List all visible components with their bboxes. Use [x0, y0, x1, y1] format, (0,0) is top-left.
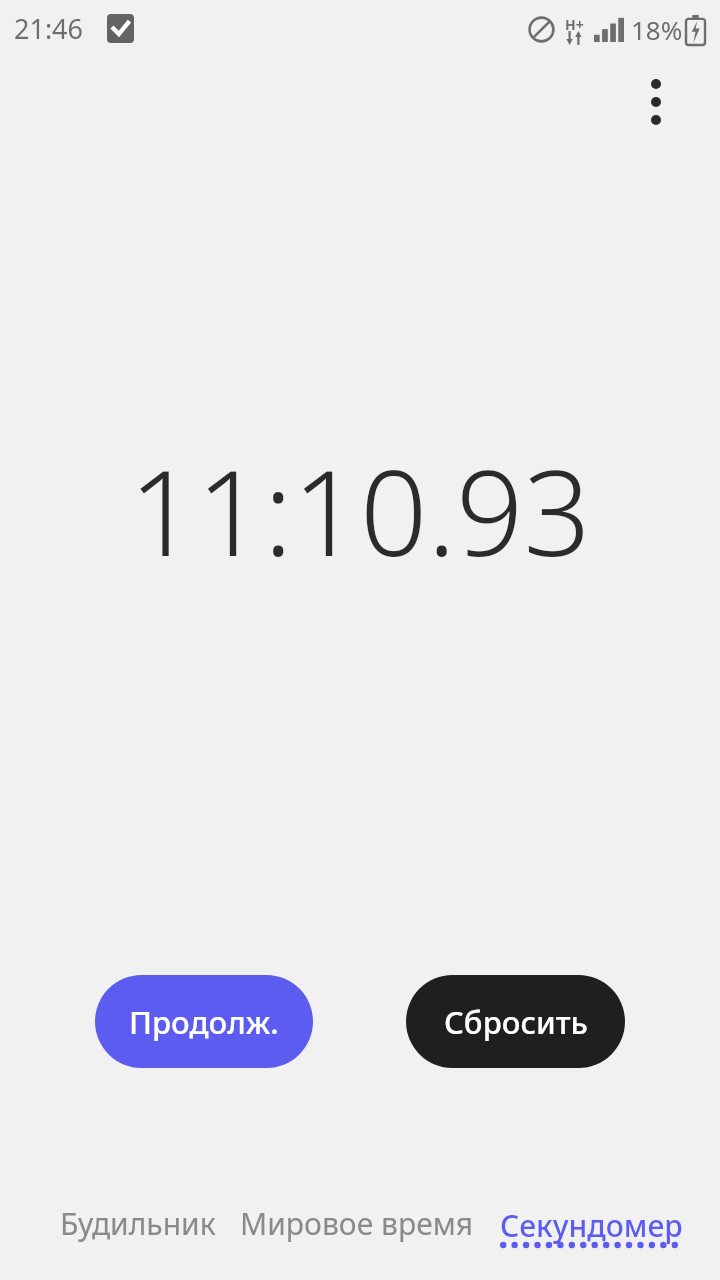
button[interactable]: Мировое время: [234, 1190, 480, 1256]
staticText: 18%: [631, 12, 683, 47]
staticText: 11:10.93: [129, 430, 591, 570]
staticText: Мировое время: [240, 1203, 474, 1244]
staticText: Секундомер: [500, 1205, 683, 1246]
staticText: Будильник: [60, 1203, 216, 1244]
button[interactable]: Секундомер: [480, 1190, 720, 1270]
staticText: Сбросить: [444, 1001, 588, 1043]
staticText: 21:46: [14, 10, 84, 47]
button[interactable]: Продолж.: [95, 975, 313, 1068]
staticText: Продолж.: [129, 1001, 279, 1043]
button[interactable]: More options: [620, 66, 692, 138]
button[interactable]: Сбросить: [406, 975, 625, 1068]
staticText: H+: [565, 15, 584, 34]
button[interactable]: Будильник: [42, 1190, 234, 1256]
